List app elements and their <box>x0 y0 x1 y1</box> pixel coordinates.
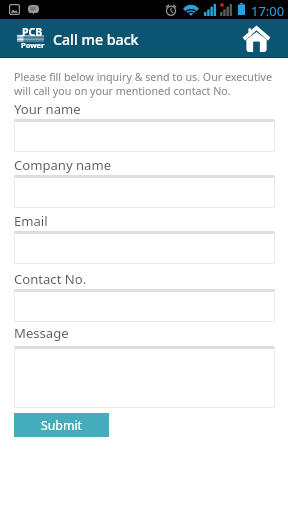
staticText: Submit <box>41 417 83 434</box>
staticText: Message <box>14 324 69 342</box>
staticText: Please fill below inquiry & send to us. … <box>14 70 273 98</box>
staticText: 17:00 <box>251 2 285 20</box>
staticText: Contact No. <box>14 270 87 288</box>
button[interactable]: Home <box>238 19 276 57</box>
button[interactable]: Contact No. <box>14 289 275 322</box>
staticText: Email <box>14 212 48 230</box>
staticText: PCB <box>22 25 43 39</box>
button[interactable]: Message <box>14 346 275 408</box>
button[interactable]: Email <box>14 231 275 264</box>
button[interactable]: Company name <box>14 175 275 208</box>
button[interactable]: Submit <box>14 413 109 437</box>
staticText: Power <box>21 40 45 50</box>
staticText: Company name <box>14 156 112 174</box>
staticText: Call me back <box>53 30 139 49</box>
button[interactable]: Your name <box>14 119 275 152</box>
staticText: Your name <box>14 100 81 118</box>
